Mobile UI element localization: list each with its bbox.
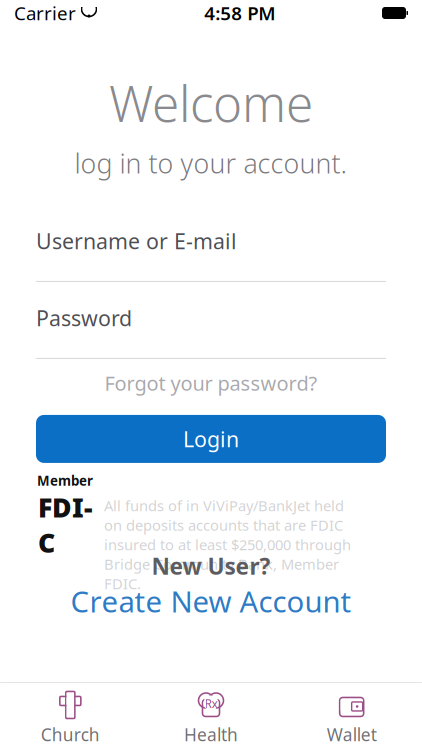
- staticText: Health: [184, 723, 238, 746]
- staticText: Wallet: [327, 723, 377, 746]
- staticText: Church: [41, 723, 100, 746]
- button[interactable]: Forgot your password?: [0, 369, 422, 397]
- button[interactable]: Wallet: [281, 689, 422, 747]
- staticText: log in to your account.: [74, 145, 347, 181]
- button[interactable]: Login: [0, 415, 422, 463]
- staticText: Welcome: [109, 70, 313, 135]
- staticText: Member: [37, 472, 93, 489]
- button[interactable]: Create New Account: [50, 585, 371, 617]
- staticText: All funds of in ViViPay/BankJet held on …: [104, 496, 351, 593]
- staticText: 4:58 PM: [204, 1, 275, 25]
- staticText: Create New Account: [70, 581, 351, 620]
- staticText: Forgot your password?: [104, 370, 317, 396]
- staticText: Carrier: [14, 1, 76, 25]
- staticText: Rx: [204, 695, 217, 711]
- staticText: Password: [36, 304, 132, 332]
- button[interactable]: Church: [0, 689, 141, 747]
- staticText: Username or E-mail: [36, 227, 237, 255]
- staticText: New User?: [151, 551, 270, 581]
- staticText: Login: [183, 425, 239, 453]
- button[interactable]: Rx: [141, 689, 281, 747]
- staticText: FDIC: [38, 489, 92, 560]
